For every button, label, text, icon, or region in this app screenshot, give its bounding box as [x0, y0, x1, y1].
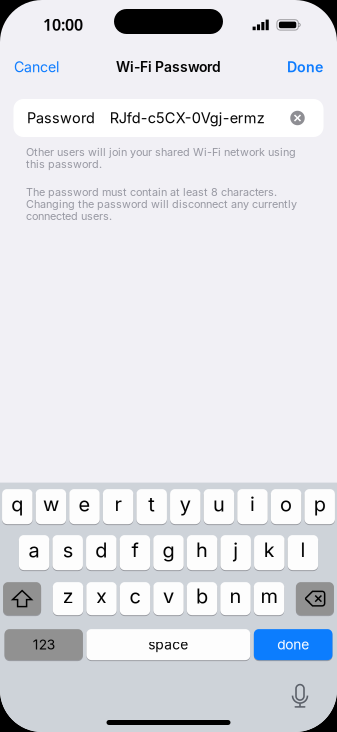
- button[interactable]: done: [254, 629, 332, 661]
- button[interactable]: b: [187, 582, 217, 616]
- button[interactable]: w: [36, 489, 66, 525]
- button[interactable]: Done: [273, 47, 337, 87]
- button[interactable]: s: [52, 535, 83, 571]
- button[interactable]: c: [120, 582, 150, 616]
- staticText: Password: [27, 109, 95, 127]
- button[interactable]: v: [153, 582, 184, 616]
- staticText: d: [95, 538, 107, 562]
- staticText: f: [131, 538, 138, 562]
- button[interactable]: r: [103, 489, 133, 525]
- button[interactable]: Clear text: [282, 103, 312, 133]
- button[interactable]: Shift: [3, 582, 41, 616]
- button[interactable]: p: [304, 489, 335, 525]
- staticText: w: [43, 492, 59, 516]
- button[interactable]: Cancel: [0, 47, 73, 87]
- staticText: done: [277, 636, 309, 653]
- button[interactable]: j: [220, 535, 251, 571]
- staticText: Done: [287, 58, 323, 75]
- button[interactable]: a: [19, 535, 49, 571]
- button[interactable]: t: [136, 489, 167, 525]
- button[interactable]: 123: [4, 629, 83, 661]
- staticText: o: [280, 492, 292, 516]
- staticText: e: [78, 492, 90, 516]
- staticText: c: [129, 584, 140, 608]
- button[interactable]: y: [170, 489, 201, 525]
- staticText: k: [264, 538, 275, 562]
- staticText: x: [96, 584, 107, 608]
- staticText: space: [148, 636, 188, 653]
- staticText: i: [250, 492, 255, 516]
- staticText: a: [29, 538, 40, 562]
- staticText: u: [213, 492, 225, 516]
- staticText: v: [163, 584, 174, 608]
- staticText: 123: [33, 636, 55, 653]
- button[interactable]: z: [53, 582, 83, 616]
- staticText: r: [115, 492, 122, 516]
- button[interactable]: h: [187, 535, 217, 571]
- button[interactable]: e: [69, 489, 100, 525]
- button[interactable]: g: [153, 535, 184, 571]
- button[interactable]: q: [2, 489, 33, 525]
- staticText: t: [148, 492, 155, 516]
- button[interactable]: i: [237, 489, 268, 525]
- staticText: n: [229, 584, 241, 608]
- staticText: p: [314, 492, 326, 516]
- staticText: h: [196, 538, 208, 562]
- button[interactable]: f: [120, 535, 150, 571]
- staticText: The password must contain at least 8 cha…: [26, 186, 297, 222]
- staticText: l: [300, 538, 305, 562]
- button[interactable]: m: [254, 582, 284, 616]
- staticText: s: [63, 538, 73, 562]
- button[interactable]: Dictation: [292, 685, 307, 708]
- button[interactable]: n: [220, 582, 251, 616]
- button[interactable]: d: [86, 535, 116, 571]
- staticText: g: [162, 538, 174, 562]
- staticText: Cancel: [14, 58, 59, 75]
- button[interactable]: k: [254, 535, 284, 571]
- staticText: b: [196, 584, 208, 608]
- staticText: y: [180, 492, 191, 516]
- button[interactable]: space: [86, 629, 250, 661]
- staticText: 10:00: [43, 14, 83, 35]
- staticText: z: [62, 584, 73, 608]
- staticText: m: [260, 584, 277, 608]
- button[interactable]: o: [271, 489, 301, 525]
- button[interactable]: u: [204, 489, 234, 525]
- staticText: q: [11, 492, 23, 516]
- button[interactable]: Delete: [296, 582, 334, 616]
- button[interactable]: l: [288, 535, 318, 571]
- staticText: RJfd-c5CX-0Vgj-ermz: [110, 109, 265, 127]
- staticText: j: [233, 538, 238, 562]
- button[interactable]: x: [86, 582, 117, 616]
- staticText: Other users will join your shared Wi-Fi …: [26, 146, 296, 170]
- staticText: Wi-Fi Password: [116, 59, 221, 75]
